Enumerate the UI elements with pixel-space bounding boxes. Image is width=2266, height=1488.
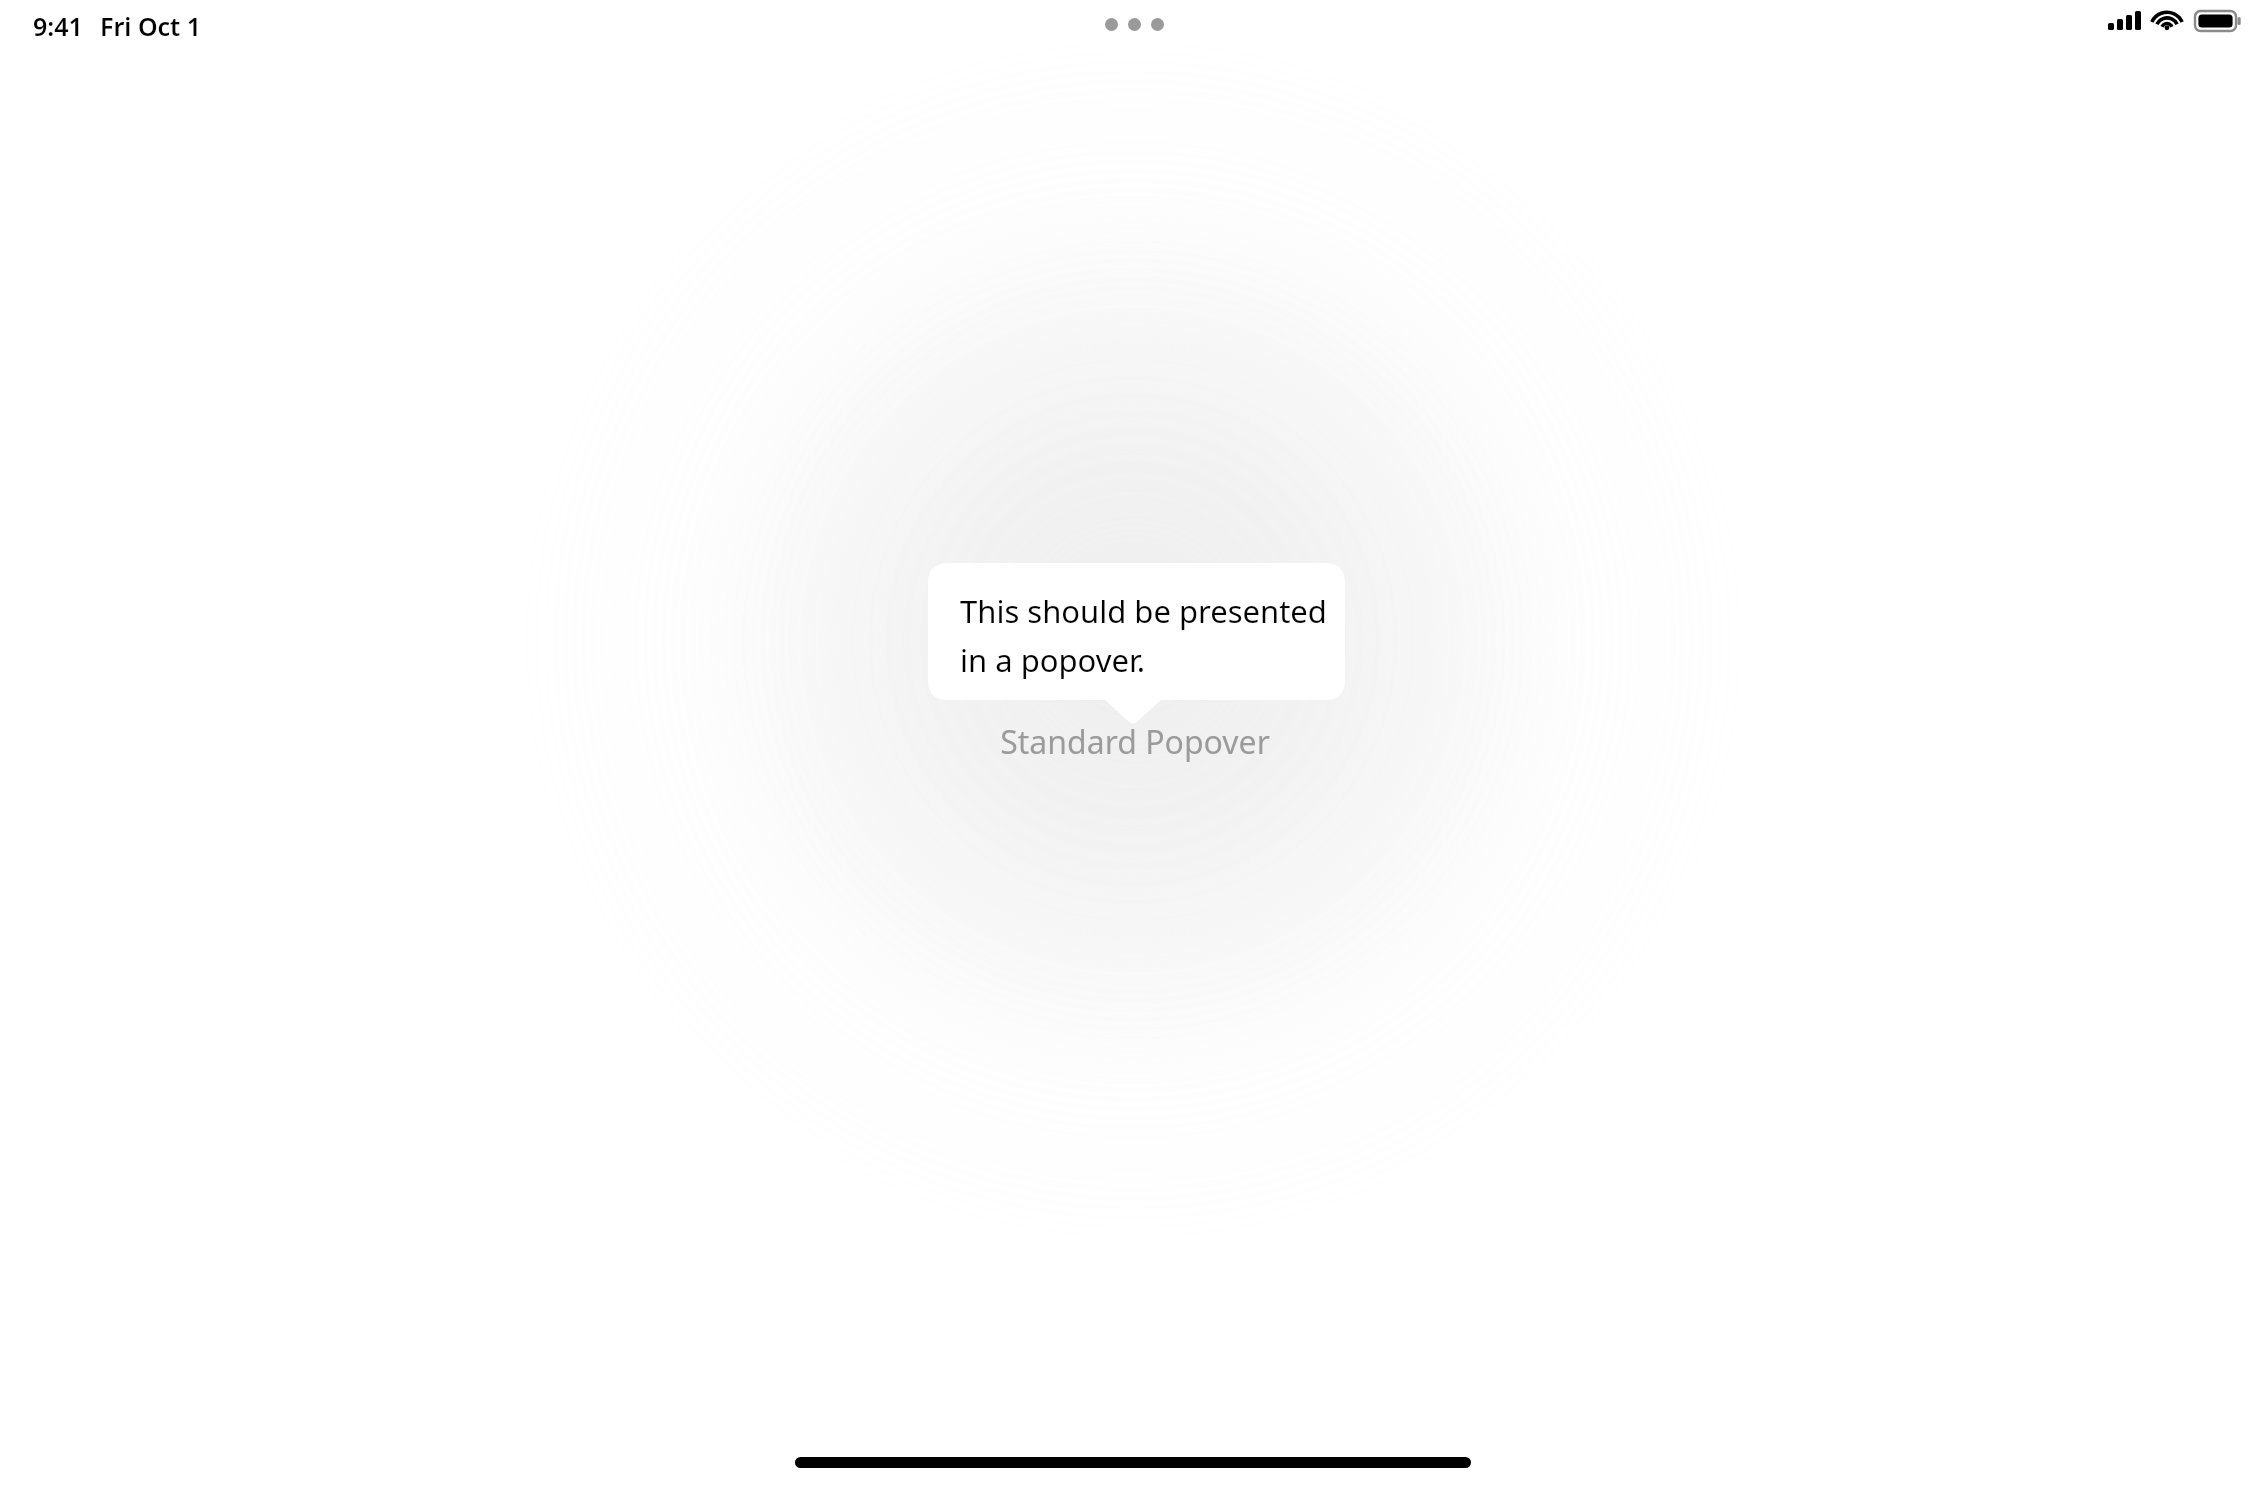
button[interactable]: This should be presented (928, 563, 1345, 729)
staticText: Standard Popover (1000, 720, 1270, 764)
button[interactable]: Standard Popover (960, 716, 1310, 768)
staticText: This should be presented (960, 590, 1327, 632)
button[interactable]: Multitasking controls (1105, 18, 1164, 31)
staticText: Fri Oct 1 (100, 9, 202, 43)
staticText: 9:41 (33, 9, 83, 43)
staticText: in a popover. (960, 639, 1146, 681)
